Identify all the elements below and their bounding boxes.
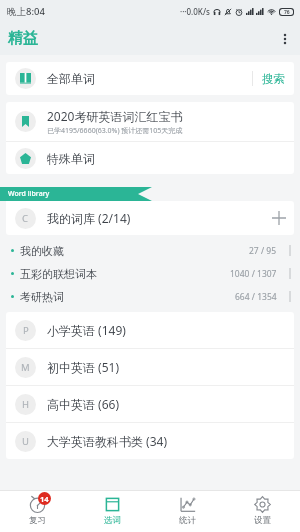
button[interactable]: 统计 — [150, 490, 225, 532]
staticText: 2020考研英语词汇红宝书 — [47, 108, 183, 124]
staticText: 664 / 1354 — [235, 291, 277, 303]
button[interactable]: 全部单词 — [6, 62, 294, 95]
button[interactable]: H — [6, 386, 294, 422]
staticText: 考研热词 — [20, 290, 64, 304]
button[interactable]: 特殊单词 — [6, 142, 294, 174]
staticText: 已学4195/6660(63.0%) 预计还需105天完成 — [47, 126, 183, 136]
staticText: ···0.0K/s — [180, 6, 210, 17]
staticText: 76 — [284, 9, 290, 15]
button[interactable]: 考研热词 — [0, 285, 300, 308]
button[interactable]: 设置 — [225, 490, 300, 532]
staticText: 选词 — [104, 515, 121, 526]
staticText: 搜索 — [262, 72, 285, 86]
staticText: 我的词库 (2/14) — [47, 210, 131, 226]
staticText: 小学英语 (149) — [47, 322, 126, 338]
staticText: Word library — [8, 189, 50, 199]
staticText: 设置 — [254, 515, 271, 526]
button[interactable]: 14 — [0, 490, 75, 532]
staticText: C — [22, 212, 29, 225]
staticText: 初中英语 (51) — [47, 359, 120, 375]
button[interactable]: U — [6, 423, 294, 459]
button[interactable]: P — [6, 312, 294, 348]
button[interactable]: 2020考研英语词汇红宝书 — [6, 102, 294, 141]
button[interactable]: Add word list — [264, 203, 294, 233]
staticText: 1040 / 1307 — [230, 268, 277, 280]
button[interactable]: More options — [270, 24, 300, 54]
button[interactable]: 五彩的联想词本 — [0, 262, 300, 285]
staticText: H — [22, 398, 30, 411]
staticText: M — [21, 361, 30, 374]
staticText: 复习 — [29, 515, 46, 526]
staticText: 大学英语教科书类 (34) — [47, 433, 168, 449]
button[interactable]: 搜索 — [253, 64, 294, 94]
button[interactable]: 我的收藏 — [0, 239, 300, 262]
staticText: 高中英语 (66) — [47, 396, 120, 412]
staticText: 全部单词 — [47, 71, 95, 86]
staticText: 我的收藏 — [20, 244, 64, 258]
staticText: U — [22, 435, 29, 448]
staticText: 五彩的联想词本 — [20, 267, 97, 281]
button[interactable]: M — [6, 349, 294, 385]
staticText: 晚上8:04 — [7, 5, 45, 18]
button[interactable]: 选词 — [75, 490, 150, 532]
staticText: P — [23, 324, 29, 337]
staticText: 统计 — [179, 515, 196, 526]
staticText: 14 — [40, 494, 49, 504]
staticText: 精益 — [8, 29, 38, 48]
staticText: 27 / 95 — [249, 245, 277, 257]
staticText: 特殊单词 — [47, 151, 95, 166]
